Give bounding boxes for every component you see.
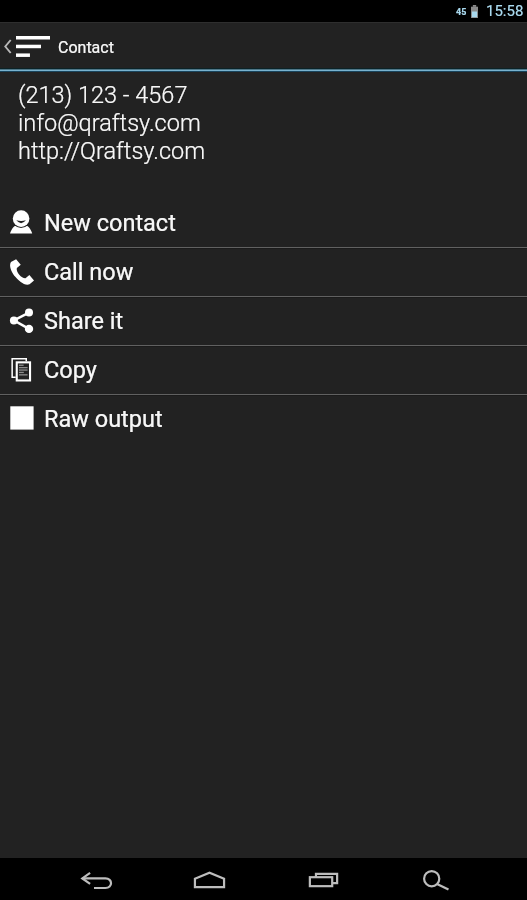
button[interactable]: Back bbox=[40, 858, 153, 900]
button[interactable]: Search bbox=[379, 858, 492, 900]
button[interactable]: Copy bbox=[0, 347, 527, 394]
staticText: 15:58 bbox=[486, 2, 524, 20]
staticText: Raw output bbox=[44, 405, 163, 433]
button[interactable]: Recent apps bbox=[266, 858, 379, 900]
button[interactable]: Home bbox=[153, 858, 266, 900]
staticText: Contact bbox=[58, 38, 114, 57]
button[interactable]: Share it bbox=[0, 298, 527, 345]
button[interactable]: Raw output bbox=[0, 396, 527, 443]
staticText: info@qraftsy.com bbox=[18, 109, 201, 137]
button[interactable]: Call now bbox=[0, 249, 527, 296]
staticText: Call now bbox=[44, 258, 134, 286]
staticText: 45 bbox=[456, 7, 467, 18]
staticText: Share it bbox=[44, 307, 124, 335]
button[interactable]: Navigate up bbox=[0, 32, 56, 61]
staticText: http://Qraftsy.com bbox=[18, 137, 206, 165]
staticText: New contact bbox=[44, 209, 176, 237]
button[interactable]: New contact bbox=[0, 200, 527, 247]
staticText: Copy bbox=[44, 356, 97, 384]
staticText: (213) 123 - 4567 bbox=[18, 81, 188, 109]
